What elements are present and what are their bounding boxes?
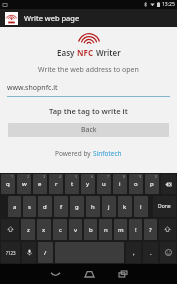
staticText: 6 [91,174,94,179]
staticText: a [13,203,17,211]
staticText: e [38,180,42,188]
button[interactable]: w [17,174,31,194]
button[interactable]: e [33,174,47,194]
staticText: m [118,226,124,234]
staticText: ?123 [6,250,16,256]
staticText: Easy [57,47,77,58]
button[interactable]: n [99,219,112,240]
button[interactable]: / [38,242,53,263]
button[interactable]: l [134,196,148,217]
staticText: 0 [155,174,158,179]
staticText: Tap the tag to write it [49,106,128,116]
button[interactable]: f [54,196,68,217]
button[interactable]: ?123 [1,242,20,263]
staticText: r [55,180,58,188]
staticText: Back [81,125,97,135]
button[interactable]: Backspace [161,174,176,194]
button[interactable]: Sinfotech [93,149,122,158]
button[interactable]: x [37,219,51,240]
staticText: Writer [94,47,121,58]
button[interactable]: t [65,174,79,194]
button[interactable]: , [126,242,141,263]
staticText: NFC [77,47,94,58]
staticText: , [133,249,135,257]
staticText: g [75,203,79,211]
staticText: . [150,249,152,257]
button[interactable]: m [114,219,127,240]
staticText: x [42,226,46,234]
button[interactable]: k [118,196,132,217]
staticText: l [140,203,142,211]
staticText: u [102,180,106,188]
staticText: n [104,226,108,234]
button[interactable]: ? [144,219,157,240]
button[interactable]: g [70,196,84,217]
staticText: Sinfotech [93,149,122,158]
button[interactable]: y [81,174,95,194]
staticText: p [150,180,154,188]
button[interactable]: b [84,219,97,240]
button[interactable]: Shift [1,219,19,240]
staticText: t [71,180,74,188]
staticText: i [119,180,121,188]
staticText: Write the web address to open [38,65,139,75]
button[interactable]: o [129,174,143,194]
staticText: 3 [43,174,46,179]
staticText: Powered by [55,149,93,158]
button[interactable]: c [53,219,67,240]
button[interactable]: Back [8,123,169,137]
button[interactable]: z [21,219,35,240]
staticText: o [134,180,138,188]
button[interactable]: Recent apps [106,264,140,284]
staticText: q [6,180,10,188]
button[interactable]: i [113,174,127,194]
staticText: 9 [139,174,142,179]
staticText: 7 [107,174,110,179]
staticText: c [59,226,62,234]
staticText: 2 [27,174,30,179]
staticText: w [22,180,27,188]
staticText: v [74,226,78,234]
staticText: z [27,226,30,234]
staticText: y [86,180,90,188]
button[interactable]: Home [72,264,106,284]
staticText: 13:25 [162,1,175,8]
staticText: 8 [123,174,126,179]
staticText: f [60,203,63,211]
button[interactable]: r [49,174,63,194]
staticText: d [43,203,47,211]
staticText: www.shopnfc.it [7,83,58,93]
button[interactable]: Done [153,196,176,217]
button[interactable]: h [86,196,100,217]
staticText: b [89,226,93,234]
staticText: 5 [75,174,78,179]
button[interactable]: u [97,174,111,194]
staticText: 1 [11,174,14,179]
button[interactable]: s [23,196,36,217]
staticText: s [28,203,31,211]
button[interactable]: ! [129,219,142,240]
button[interactable]: Emoji [160,242,176,263]
button[interactable]: . [143,242,158,263]
button[interactable]: v [69,219,82,240]
button[interactable]: Voice input [22,242,36,263]
button[interactable]: d [38,196,52,217]
button[interactable]: a [8,196,21,217]
button[interactable]: Shift [159,219,176,240]
button[interactable]: p [145,174,159,194]
staticText: Done [158,203,171,210]
staticText: Write web page [24,13,80,23]
staticText: 4 [59,174,62,179]
staticText: h [91,203,95,211]
staticText: k [123,203,127,211]
staticText: j [108,203,110,211]
button[interactable]: j [102,196,116,217]
staticText: ? [149,226,152,234]
staticText: ! [135,226,137,234]
button[interactable]: Back [38,264,72,284]
staticText: / [44,249,47,257]
button[interactable]: q [1,174,15,194]
